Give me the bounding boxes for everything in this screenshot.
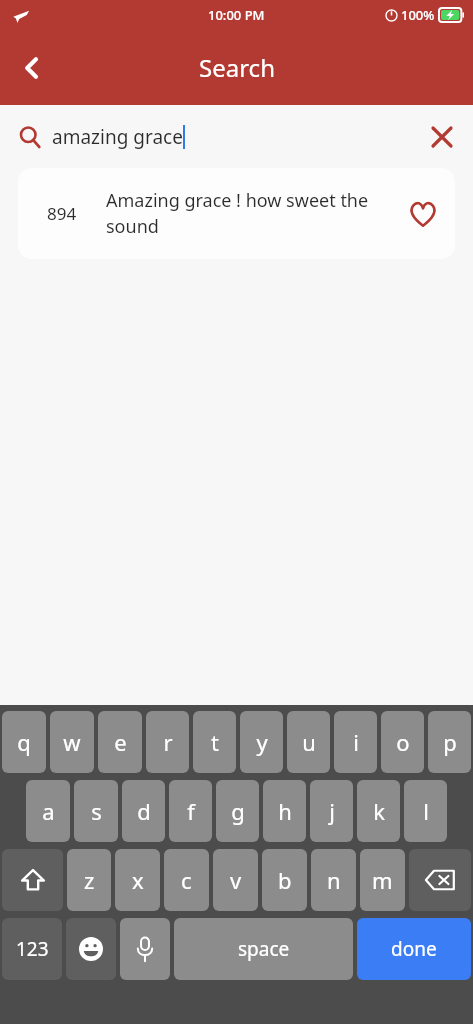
- staticText: j: [329, 796, 335, 826]
- button[interactable]: r: [146, 711, 189, 773]
- button[interactable]: Favourite: [391, 168, 455, 259]
- staticText: m: [372, 865, 393, 895]
- staticText: b: [278, 865, 292, 895]
- staticText: p: [443, 727, 457, 757]
- button[interactable]: x: [115, 849, 160, 911]
- staticText: l: [423, 796, 429, 826]
- staticText: Amazing grace ! how sweet the sound: [106, 188, 383, 239]
- staticText: u: [302, 727, 316, 757]
- staticText: c: [181, 865, 192, 895]
- button[interactable]: d: [122, 780, 165, 842]
- button[interactable]: Back: [8, 44, 56, 92]
- staticText: e: [114, 727, 127, 757]
- staticText: 123: [16, 936, 49, 962]
- button[interactable]: Voice input: [120, 918, 170, 980]
- button[interactable]: b: [262, 849, 307, 911]
- staticText: o: [396, 727, 410, 757]
- staticText: w: [63, 727, 81, 757]
- button[interactable]: c: [164, 849, 209, 911]
- button[interactable]: Backspace: [409, 849, 471, 911]
- button[interactable]: h: [263, 780, 306, 842]
- button[interactable]: a: [26, 780, 70, 842]
- button[interactable]: g: [216, 780, 259, 842]
- staticText: amazing grace: [52, 124, 183, 150]
- button[interactable]: space: [174, 918, 353, 980]
- button[interactable]: m: [360, 849, 405, 911]
- button[interactable]: 123: [2, 918, 62, 980]
- button[interactable]: Search: [10, 117, 50, 157]
- staticText: v: [230, 865, 242, 895]
- button[interactable]: o: [381, 711, 424, 773]
- button[interactable]: y: [240, 711, 283, 773]
- staticText: 894: [47, 202, 77, 225]
- staticText: f: [187, 796, 195, 826]
- staticText: g: [231, 796, 245, 826]
- button[interactable]: p: [428, 711, 471, 773]
- staticText: t: [211, 727, 219, 757]
- staticText: i: [353, 727, 359, 757]
- button[interactable]: u: [287, 711, 330, 773]
- button[interactable]: j: [310, 780, 353, 842]
- button[interactable]: k: [357, 780, 400, 842]
- staticText: 10:00 PM: [208, 6, 265, 24]
- button[interactable]: n: [311, 849, 356, 911]
- staticText: 100%: [401, 6, 435, 24]
- button[interactable]: z: [67, 849, 111, 911]
- button[interactable]: q: [2, 711, 46, 773]
- staticText: Search: [199, 51, 275, 84]
- button[interactable]: 894: [18, 168, 455, 259]
- staticText: d: [137, 796, 151, 826]
- button[interactable]: Shift: [2, 849, 63, 911]
- staticText: q: [17, 727, 31, 757]
- staticText: r: [163, 727, 173, 757]
- staticText: x: [132, 865, 144, 895]
- button[interactable]: i: [334, 711, 377, 773]
- button[interactable]: t: [193, 711, 236, 773]
- button[interactable]: f: [169, 780, 212, 842]
- button[interactable]: done: [357, 918, 471, 980]
- staticText: y: [256, 727, 268, 757]
- button[interactable]: Clear: [421, 116, 463, 158]
- button[interactable]: l: [404, 780, 447, 842]
- staticText: done: [391, 936, 437, 962]
- button[interactable]: e: [98, 711, 142, 773]
- staticText: n: [327, 865, 341, 895]
- staticText: a: [42, 796, 55, 826]
- staticText: z: [84, 865, 95, 895]
- staticText: h: [278, 796, 292, 826]
- button[interactable]: w: [50, 711, 94, 773]
- button[interactable]: s: [74, 780, 118, 842]
- staticText: k: [373, 796, 385, 826]
- staticText: space: [238, 936, 290, 962]
- button[interactable]: Emoji: [66, 918, 116, 980]
- staticText: s: [91, 796, 102, 826]
- button[interactable]: v: [213, 849, 258, 911]
